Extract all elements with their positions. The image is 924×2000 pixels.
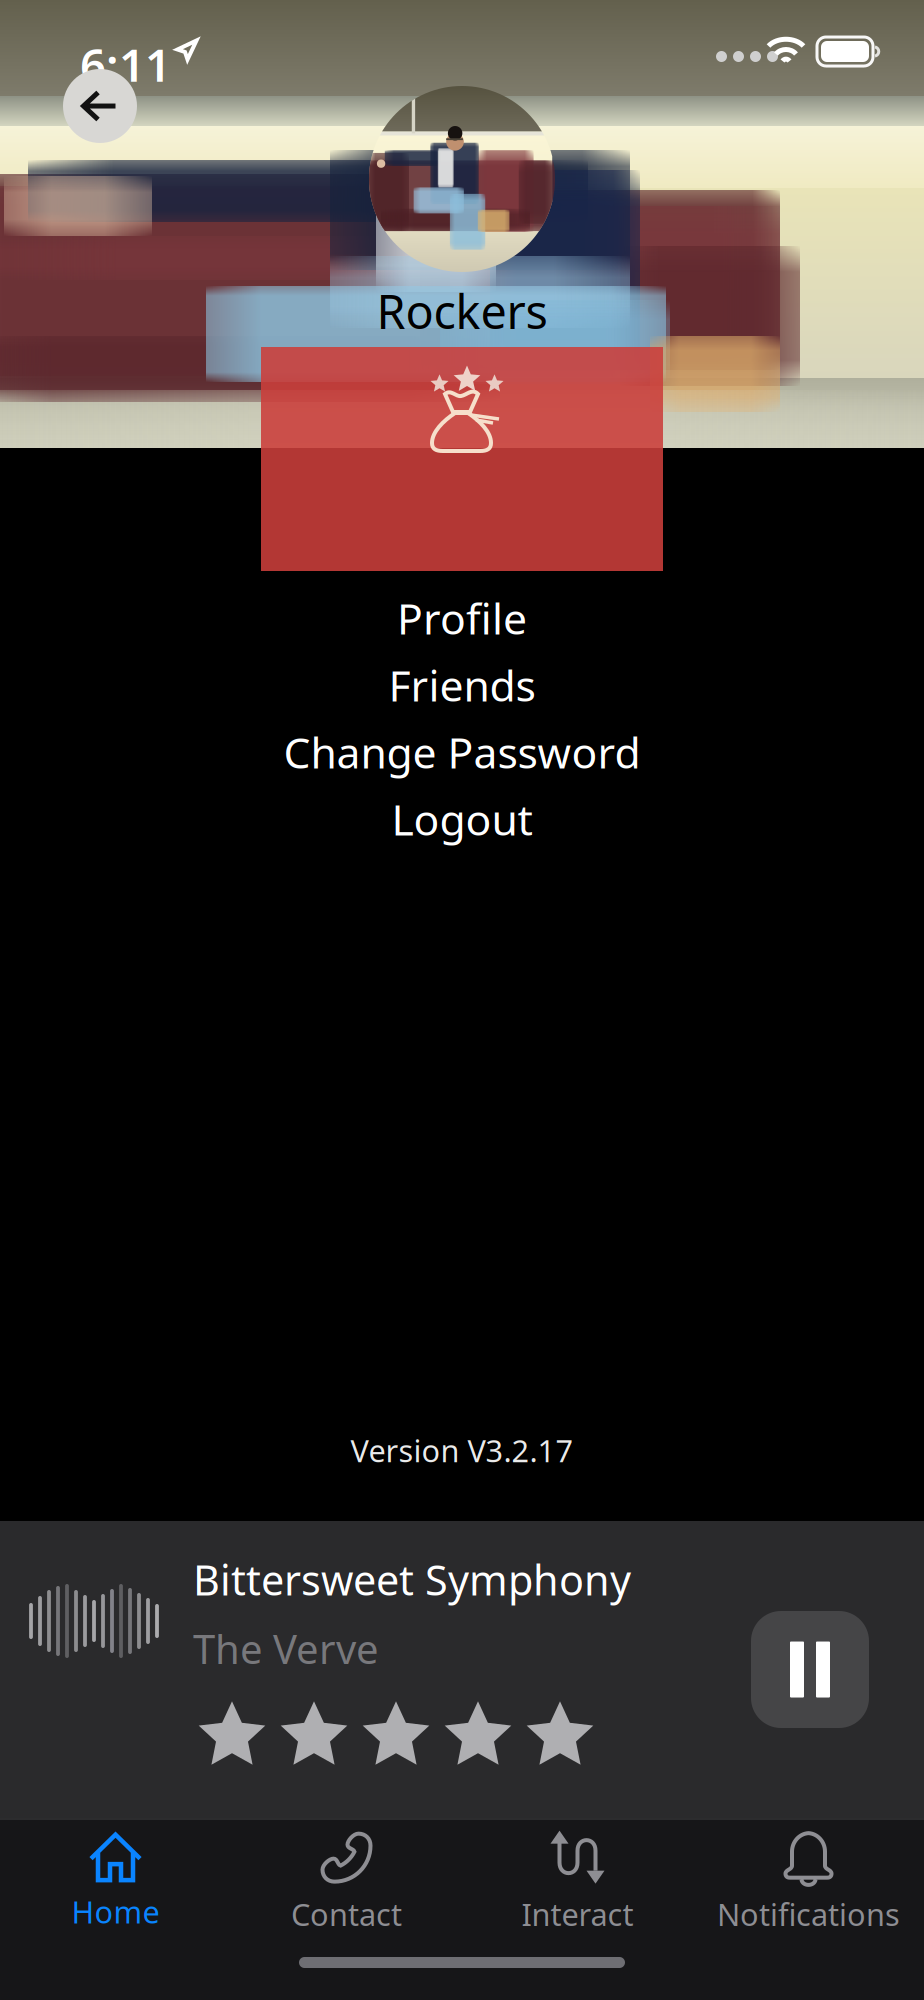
button[interactable]: Logout — [0, 791, 924, 847]
staticText: Logout — [391, 791, 532, 847]
button[interactable]: Rewards — [261, 347, 663, 571]
button[interactable]: Change Password — [0, 724, 924, 780]
staticText: Interact — [521, 1894, 633, 1934]
staticText: Notifications — [717, 1894, 900, 1934]
staticText: Contact — [291, 1894, 402, 1934]
staticText: Change Password — [283, 724, 640, 780]
button[interactable]: Profile — [0, 590, 924, 646]
staticText: Home — [71, 1891, 159, 1932]
staticText: The Verve — [193, 1622, 379, 1675]
staticText: Friends — [388, 657, 535, 713]
staticText: Profile — [397, 590, 527, 646]
button[interactable]: Back — [63, 69, 137, 143]
button[interactable]: Friends — [0, 657, 924, 713]
staticText: Version V3.2.17 — [350, 1430, 573, 1471]
button[interactable]: Interact — [462, 1826, 693, 1938]
button[interactable]: Contact — [231, 1826, 462, 1938]
staticText: Rockers — [376, 280, 547, 342]
button[interactable]: Home — [0, 1826, 231, 1938]
button[interactable]: Pause — [751, 1611, 869, 1728]
button[interactable]: Notifications — [693, 1826, 924, 1938]
staticText: Bittersweet Symphony — [193, 1552, 631, 1607]
staticText: 6:11 — [80, 34, 171, 94]
